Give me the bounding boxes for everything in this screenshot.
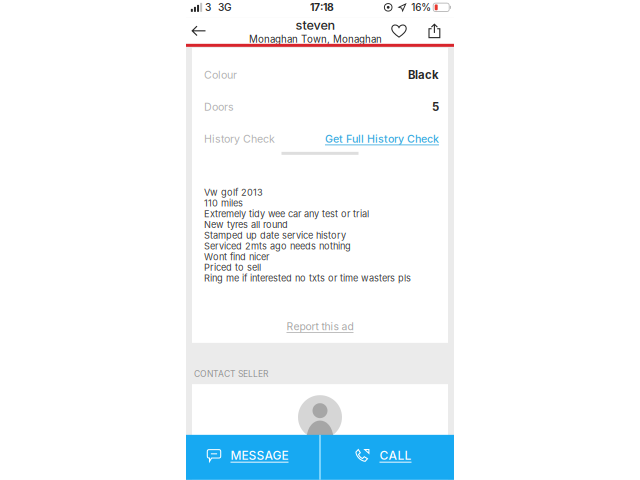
staticText: CONTACT SELLER [194,369,268,379]
button[interactable]: Report this ad [192,313,448,340]
staticText: Stamped up date service history [204,230,346,241]
staticText: New tyres all round [204,219,288,230]
button[interactable]: MESSAGE [186,435,320,480]
staticText: History Check [204,132,275,145]
staticText: 3 [205,1,211,13]
staticText: Extremely tidy wee car any test or trial [204,208,369,219]
button[interactable]: Back [187,18,211,44]
staticText: 110 miles [204,198,243,209]
staticText: Report this ad [286,320,353,333]
button[interactable]: Get Full History Check [325,132,439,145]
staticText: CALL [379,448,411,463]
staticText: 16% [411,1,431,13]
staticText: 3G [218,1,232,13]
staticText: MESSAGE [230,448,288,463]
button[interactable]: Share [422,18,447,44]
staticText: 17:18 [310,1,334,14]
staticText: Monaghan Town, Monaghan [249,33,382,45]
staticText: Ring me if interested no txts or time wa… [204,273,411,284]
staticText: Get Full History Check [325,132,439,145]
button[interactable]: CALL [320,435,454,480]
staticText: 5 [432,100,439,114]
staticText: Colour [204,68,237,81]
staticText: Wont find nicer [204,251,269,262]
staticText: Vw golf 2013 [204,187,263,198]
button[interactable]: Favourite [387,18,411,44]
staticText: steven [295,17,335,33]
staticText: Doors [204,100,234,113]
staticText: Serviced 2mts ago needs nothing [204,240,351,252]
staticText: Black [408,68,439,82]
staticText: Priced to sell [204,262,261,273]
